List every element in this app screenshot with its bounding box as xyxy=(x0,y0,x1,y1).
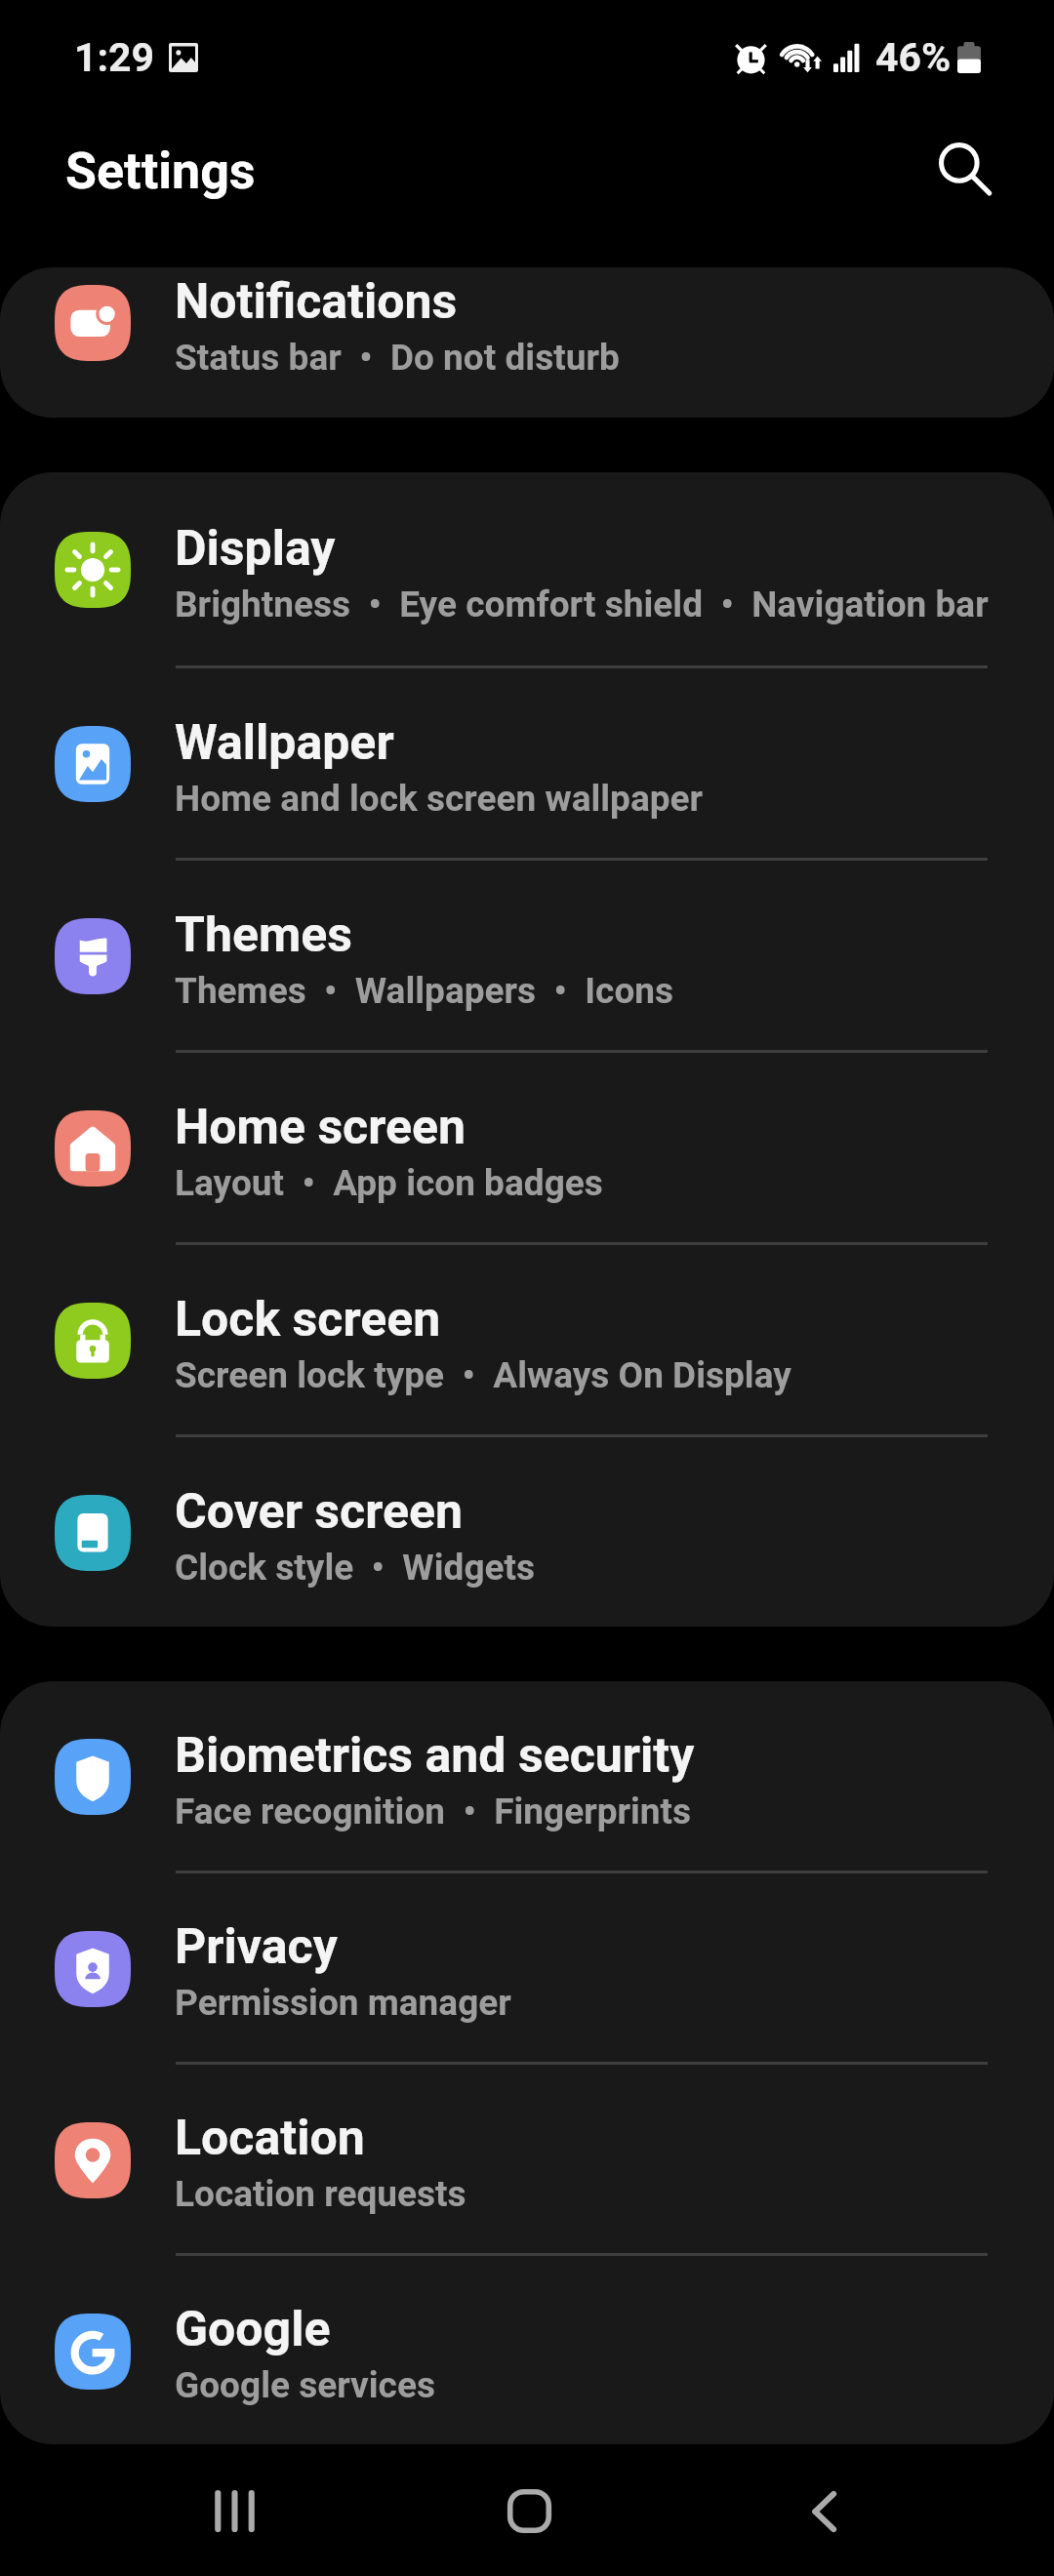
staticText: Google services xyxy=(175,2358,435,2407)
staticText: Location requests xyxy=(175,2167,466,2216)
button[interactable]: Home xyxy=(431,2444,627,2576)
staticText: Permission manager xyxy=(175,1976,511,2025)
staticText: Home screen xyxy=(175,1099,466,1156)
staticText: Privacy xyxy=(175,1918,338,1976)
button[interactable]: Recent apps xyxy=(137,2444,332,2576)
staticText: Brightness • Eye comfort shield • Naviga… xyxy=(175,578,989,626)
button[interactable]: Display xyxy=(0,472,1054,665)
staticText: Lock screen xyxy=(175,1291,441,1348)
staticText: Screen lock type • Always On Display xyxy=(175,1348,791,1397)
staticText: Face recognition • Fingerprints xyxy=(175,1785,692,1833)
staticText: Layout • App icon badges xyxy=(175,1156,603,1205)
staticText: Status bar • Do not disturb xyxy=(175,331,620,380)
staticText: 46% xyxy=(875,34,952,81)
staticText: Display xyxy=(175,520,336,578)
staticText: Cover screen xyxy=(175,1483,464,1541)
staticText: Notifications xyxy=(175,273,458,331)
staticText: Home and lock screen wallpaper xyxy=(175,772,704,821)
button[interactable]: Back xyxy=(726,2444,921,2576)
staticText: Themes • Wallpapers • Icons xyxy=(175,964,674,1013)
button[interactable]: Search xyxy=(912,123,1009,221)
button[interactable]: Themes xyxy=(0,861,1054,1050)
staticText: Clock style • Widgets xyxy=(175,1541,536,1590)
staticText: 1:29 xyxy=(74,34,155,81)
button[interactable]: Location xyxy=(0,2065,1054,2253)
button[interactable]: Home screen xyxy=(0,1053,1054,1242)
button[interactable]: Privacy xyxy=(0,1873,1054,2062)
button[interactable]: Wallpaper xyxy=(0,668,1054,858)
staticText: Settings xyxy=(65,141,256,201)
button[interactable]: Lock screen xyxy=(0,1245,1054,1434)
staticText: Location xyxy=(175,2110,365,2167)
staticText: Themes xyxy=(175,906,353,964)
button[interactable]: Notifications xyxy=(0,267,1054,377)
button[interactable]: Google xyxy=(0,2256,1054,2444)
button[interactable]: Cover screen xyxy=(0,1437,1054,1627)
staticText: Google xyxy=(175,2301,331,2358)
staticText: Wallpaper xyxy=(175,714,394,772)
button[interactable]: Biometrics and security xyxy=(0,1681,1054,1871)
staticText: Biometrics and security xyxy=(175,1727,695,1785)
